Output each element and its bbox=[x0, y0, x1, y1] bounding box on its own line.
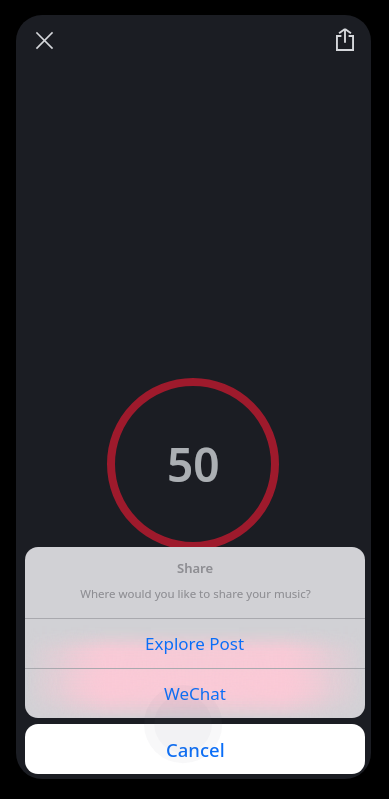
button[interactable]: Close bbox=[24, 20, 64, 60]
button[interactable]: WeChat bbox=[25, 669, 365, 718]
button[interactable]: Explore Post bbox=[25, 619, 365, 668]
staticText: WeChat bbox=[164, 682, 226, 705]
staticText: Share bbox=[177, 559, 214, 577]
staticText: Cancel bbox=[166, 737, 225, 762]
staticText: Explore Post bbox=[145, 632, 245, 655]
button[interactable]: Share bbox=[325, 19, 365, 59]
staticText: Where would you like to share your music… bbox=[80, 586, 311, 602]
staticText: 50 bbox=[167, 433, 220, 496]
button[interactable]: Cancel bbox=[25, 724, 365, 774]
